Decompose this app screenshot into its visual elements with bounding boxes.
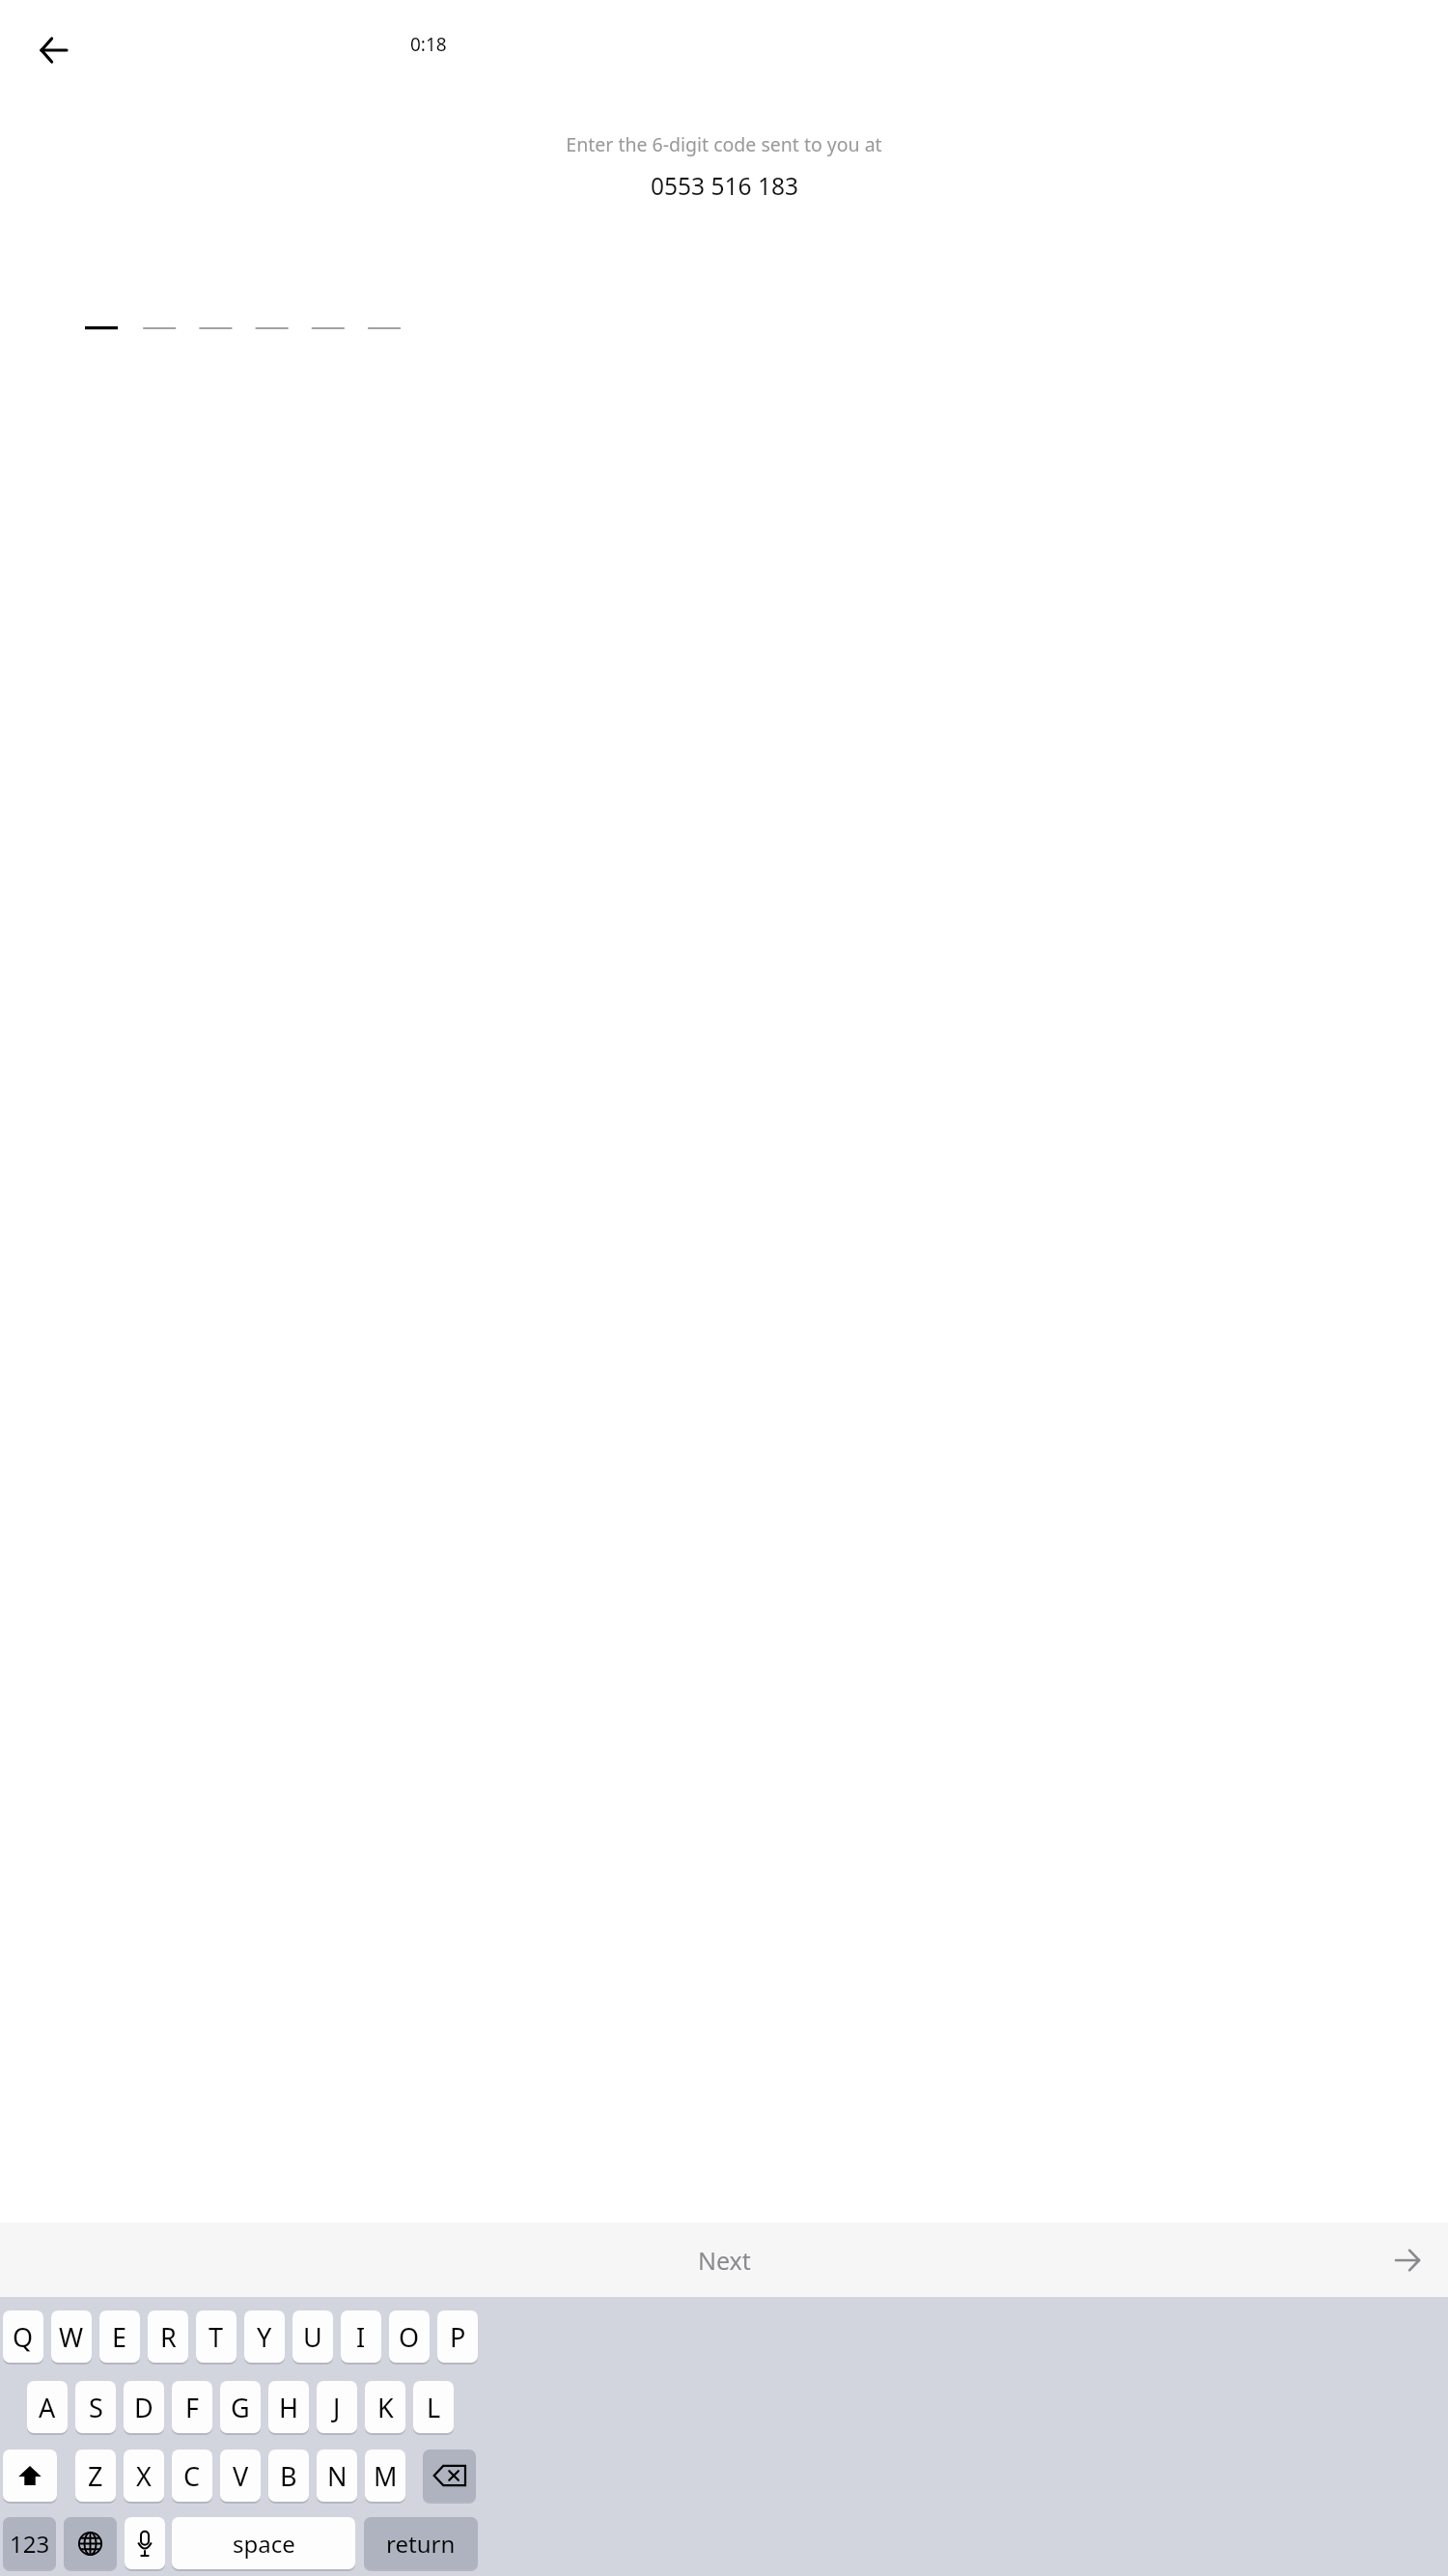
button[interactable]: space xyxy=(172,2517,355,2570)
staticText: U xyxy=(303,2319,322,2355)
button[interactable]: Backspace xyxy=(423,2450,476,2503)
staticText: C xyxy=(183,2458,201,2494)
staticText: G xyxy=(231,2390,250,2425)
button[interactable]: G xyxy=(220,2381,261,2434)
staticText: 0:18 xyxy=(410,32,447,57)
staticText: Y xyxy=(257,2319,272,2355)
button[interactable]: X xyxy=(124,2450,164,2503)
button[interactable]: J xyxy=(317,2381,357,2434)
staticText: P xyxy=(450,2319,466,2355)
staticText: R xyxy=(160,2319,177,2355)
button[interactable]: C xyxy=(172,2450,212,2503)
staticText: X xyxy=(136,2458,152,2494)
staticText: space xyxy=(233,2528,295,2560)
button[interactable]: M xyxy=(365,2450,405,2503)
button[interactable]: B xyxy=(268,2450,309,2503)
button[interactable]: T xyxy=(196,2310,237,2364)
button[interactable]: I xyxy=(341,2310,381,2364)
staticText: J xyxy=(333,2390,341,2425)
staticText: return xyxy=(386,2528,456,2560)
button[interactable]: 123 xyxy=(3,2517,56,2570)
button[interactable]: N xyxy=(317,2450,357,2503)
staticText: S xyxy=(89,2390,103,2425)
button[interactable]: D xyxy=(124,2381,164,2434)
button[interactable]: Shift xyxy=(3,2450,57,2503)
staticText: A xyxy=(39,2390,56,2425)
button[interactable]: K xyxy=(365,2381,405,2434)
button[interactable]: A xyxy=(27,2381,68,2434)
staticText: N xyxy=(327,2458,348,2494)
button[interactable]: Back xyxy=(23,19,85,81)
button[interactable]: Change keyboard xyxy=(64,2517,117,2570)
button[interactable]: H xyxy=(268,2381,309,2434)
staticText: Next xyxy=(698,2244,751,2277)
staticText: I xyxy=(356,2319,366,2355)
button[interactable]: V xyxy=(220,2450,261,2503)
staticText: 0553 516 183 xyxy=(651,170,798,202)
button[interactable]: Q xyxy=(3,2310,43,2364)
button[interactable]: E xyxy=(99,2310,140,2364)
button[interactable]: Y xyxy=(244,2310,285,2364)
button[interactable]: O xyxy=(389,2310,430,2364)
button[interactable]: S xyxy=(75,2381,116,2434)
staticText: M xyxy=(374,2458,398,2494)
button[interactable]: W xyxy=(51,2310,92,2364)
staticText: Z xyxy=(88,2458,103,2494)
staticText: D xyxy=(134,2390,153,2425)
button[interactable]: Next xyxy=(1386,2239,1429,2282)
staticText: H xyxy=(279,2390,299,2425)
button[interactable]: R xyxy=(148,2310,188,2364)
staticText: V xyxy=(233,2458,249,2494)
button[interactable]: return xyxy=(364,2517,478,2570)
button[interactable]: Voice input xyxy=(125,2517,165,2570)
button[interactable]: Next xyxy=(0,2223,1448,2297)
staticText: E xyxy=(112,2319,127,2355)
staticText: L xyxy=(427,2390,441,2425)
staticText: K xyxy=(377,2390,394,2425)
button[interactable]: L xyxy=(413,2381,454,2434)
button[interactable]: P xyxy=(437,2310,478,2364)
button[interactable]: F xyxy=(172,2381,212,2434)
staticText: T xyxy=(209,2319,224,2355)
staticText: 123 xyxy=(10,2528,50,2560)
button[interactable]: Z xyxy=(75,2450,116,2503)
staticText: B xyxy=(280,2458,297,2494)
staticText: W xyxy=(59,2319,84,2355)
staticText: F xyxy=(185,2390,200,2425)
staticText: Q xyxy=(13,2319,34,2355)
staticText: Enter the 6-digit code sent to you at xyxy=(566,131,882,157)
staticText: O xyxy=(399,2319,420,2355)
button[interactable]: U xyxy=(292,2310,333,2364)
